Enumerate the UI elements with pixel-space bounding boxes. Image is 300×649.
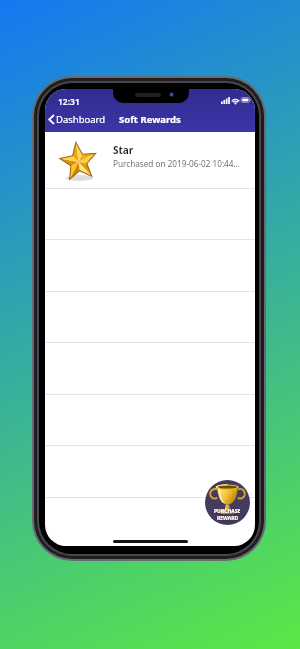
button[interactable]: Dashboard <box>47 106 106 132</box>
staticText: Soft Rewards <box>119 113 181 126</box>
staticText: Star <box>113 143 134 157</box>
staticText: 12:31 <box>58 96 80 108</box>
staticText: Purchased on 2019-06-02 10:44… <box>113 158 240 169</box>
staticText: Dashboard <box>56 113 106 126</box>
button[interactable]: Star <box>45 132 255 188</box>
button[interactable]: PURCHASE <box>205 480 250 525</box>
staticText: REWARD <box>217 515 239 522</box>
staticText: PURCHASE <box>214 508 241 515</box>
